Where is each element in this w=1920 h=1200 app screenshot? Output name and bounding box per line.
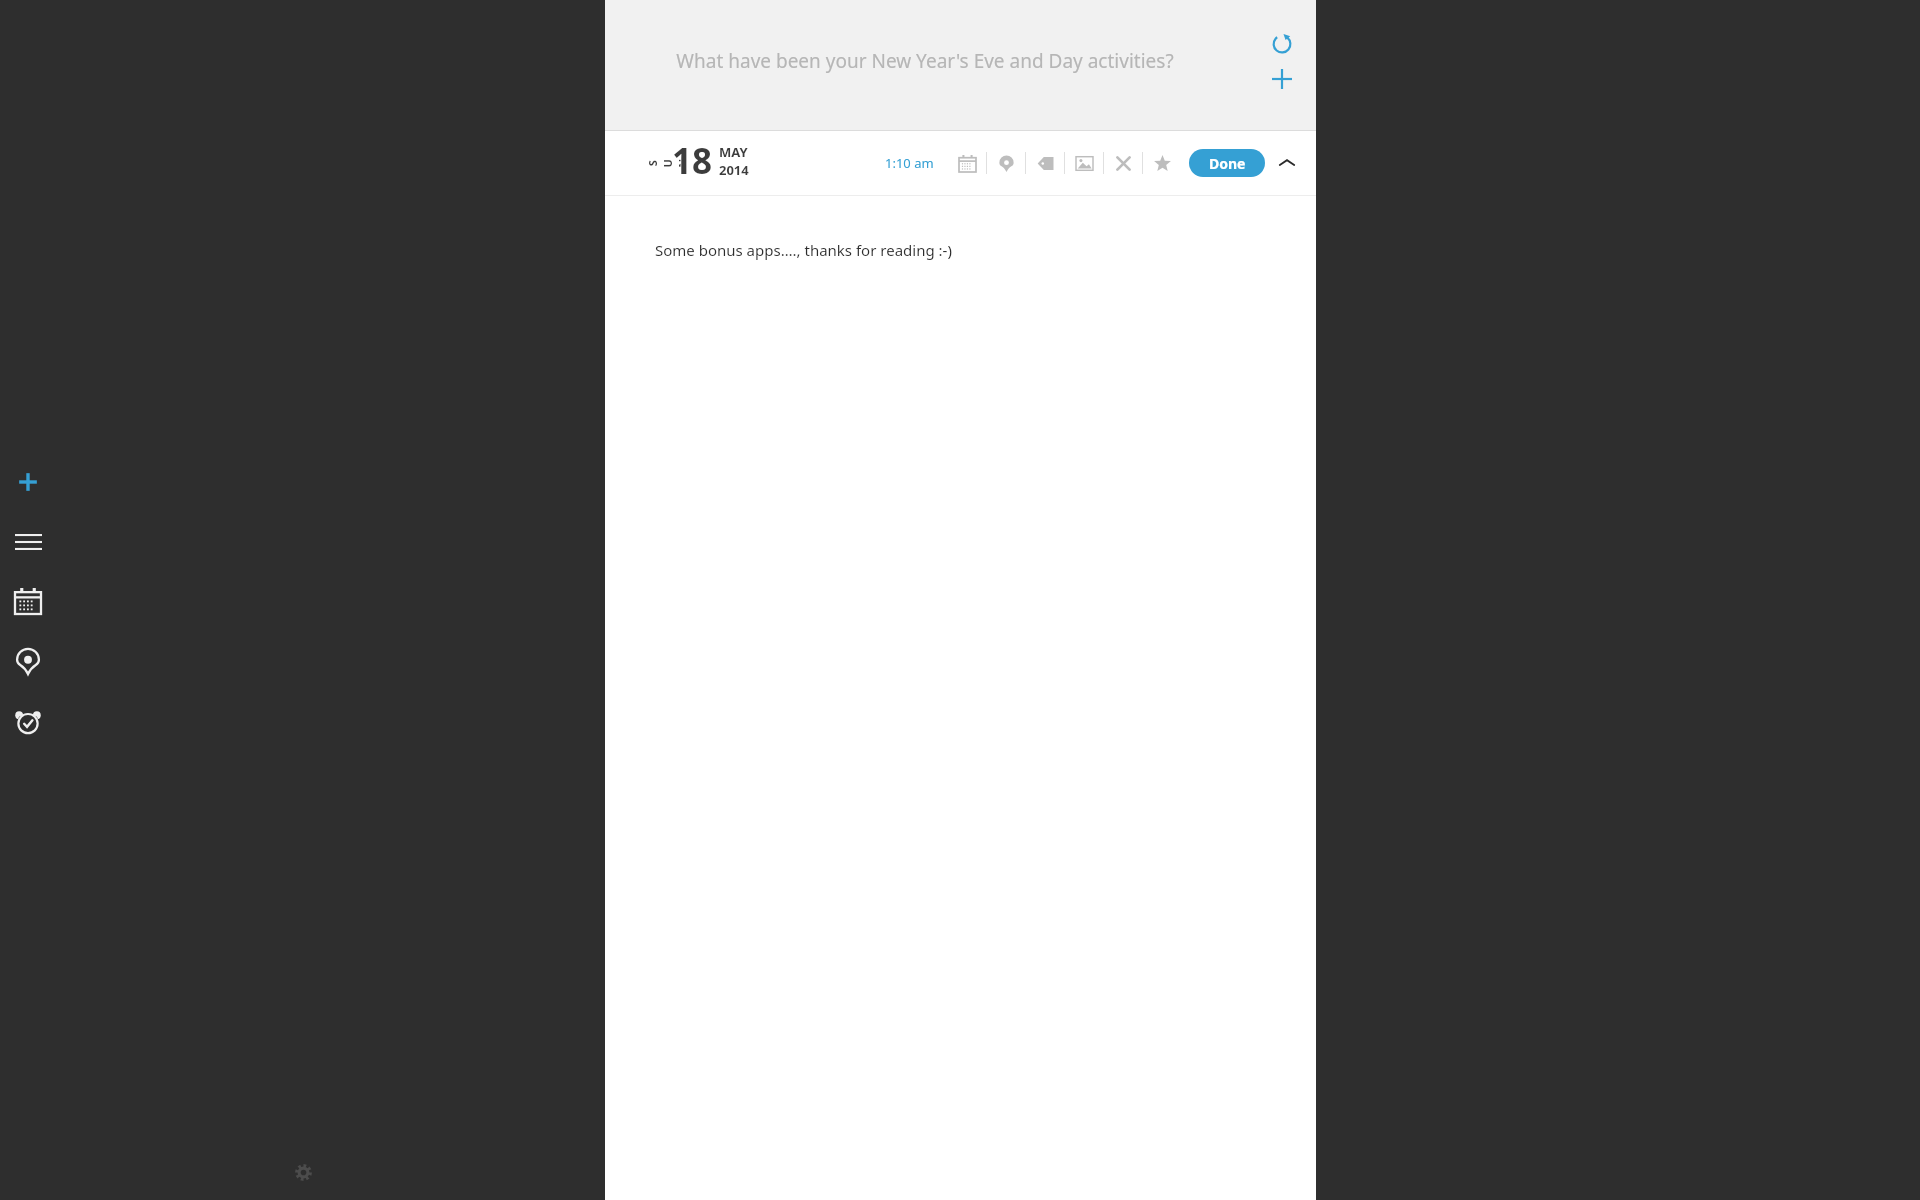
staticText: MAY [719,143,748,161]
button[interactable]: Calendar [0,573,56,629]
staticText: 18 [672,137,713,185]
button[interactable]: Places [0,633,56,689]
button[interactable]: Reminders [0,693,56,749]
button[interactable]: Collapse entry [1271,147,1303,179]
button[interactable]: Change date [948,143,986,183]
staticText: 2014 [719,161,749,179]
button[interactable]: Add photo [1065,143,1103,183]
button[interactable]: Add entry [1265,62,1299,96]
button[interactable]: Location [987,143,1025,183]
button[interactable]: Delete [1104,143,1142,183]
staticText: Done [1209,154,1246,173]
button[interactable]: Menu [0,514,56,570]
button[interactable]: New question [1265,26,1299,60]
staticText: SUN [644,155,680,170]
button[interactable]: New entry [0,454,56,510]
button[interactable]: Settings [285,1154,321,1190]
button[interactable]: Done [1189,149,1265,177]
staticText: 1:10 am [885,154,934,172]
button[interactable]: Favorite [1143,143,1181,183]
staticText: Some bonus apps…., thanks for reading :-… [655,240,952,260]
staticText: What have been your New Year's Eve and D… [645,48,1205,74]
button[interactable]: Tags [1026,143,1064,183]
button[interactable]: 1:10 am [880,148,939,178]
